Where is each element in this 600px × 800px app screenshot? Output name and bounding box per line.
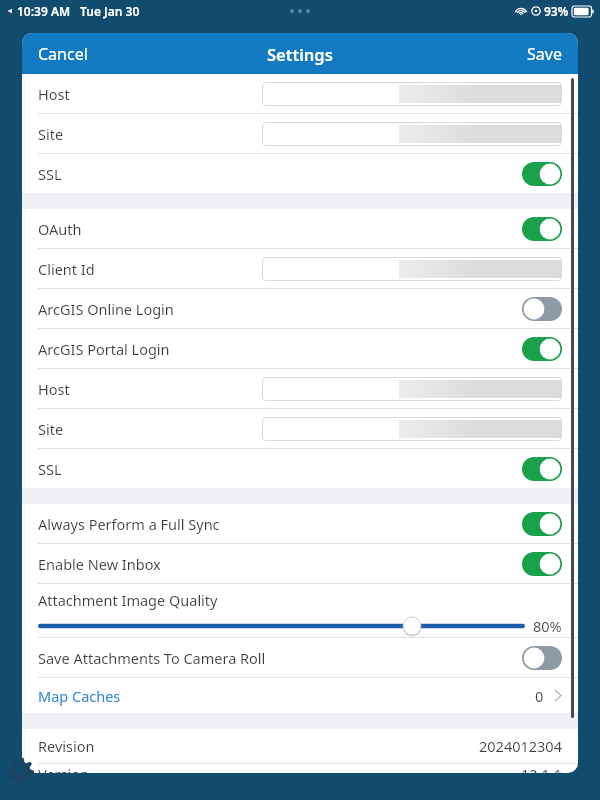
staticText: Save Attachments To Camera Roll <box>38 648 266 668</box>
button[interactable]: Host <box>22 369 578 408</box>
button[interactable]: Site <box>22 114 578 153</box>
staticText: 80% <box>533 616 562 636</box>
button[interactable]: Site <box>22 409 578 448</box>
staticText: OAuth <box>38 219 82 239</box>
staticText: 0 <box>535 686 544 706</box>
staticText: Site <box>38 124 64 144</box>
staticText: 2024012304 <box>479 736 562 756</box>
staticText: Site <box>38 419 64 439</box>
staticText: Revision <box>38 736 95 756</box>
button[interactable]: Save Attachments To Camera Roll <box>22 638 578 677</box>
button[interactable]: Client Id <box>22 249 578 288</box>
staticText: Host <box>38 379 70 399</box>
button[interactable]: OAuth <box>22 209 578 248</box>
button[interactable]: Save <box>511 33 578 74</box>
button[interactable]: Host <box>22 74 578 113</box>
staticText: Cancel <box>38 43 88 65</box>
staticText: Tue Jan 30 <box>80 3 140 19</box>
button[interactable]: Always Perform a Full Sync <box>22 504 578 543</box>
button[interactable]: Attachment Image Quality <box>22 584 578 637</box>
staticText: Settings <box>267 43 333 65</box>
button[interactable]: Cancel <box>22 33 104 74</box>
staticText: Always Perform a Full Sync <box>38 514 220 534</box>
staticText: ArcGIS Portal Login <box>38 339 170 359</box>
staticText: SSL <box>38 459 62 479</box>
staticText: Map Caches <box>38 686 121 706</box>
staticText: 10:39 AM <box>17 3 71 19</box>
button[interactable]: Enable New Inbox <box>22 544 578 583</box>
staticText: Attachment Image Quality <box>38 590 218 610</box>
staticText: 12.1.1 <box>521 764 562 773</box>
staticText: SSL <box>38 164 62 184</box>
staticText: Version <box>38 764 89 773</box>
button[interactable]: SSL <box>22 154 578 193</box>
staticText: Enable New Inbox <box>38 554 161 574</box>
button[interactable]: ArcGIS Portal Login <box>22 329 578 368</box>
button[interactable]: SSL <box>22 449 578 488</box>
staticText: ArcGIS Online Login <box>38 299 174 319</box>
button[interactable]: Revision <box>22 729 578 763</box>
staticText: Client Id <box>38 259 95 279</box>
staticText: 93% <box>544 3 569 19</box>
staticText: Save <box>527 43 562 65</box>
button[interactable]: Version <box>22 764 578 773</box>
button[interactable]: ArcGIS Online Login <box>22 289 578 328</box>
staticText: Host <box>38 84 70 104</box>
button[interactable]: Map Caches <box>22 678 578 713</box>
